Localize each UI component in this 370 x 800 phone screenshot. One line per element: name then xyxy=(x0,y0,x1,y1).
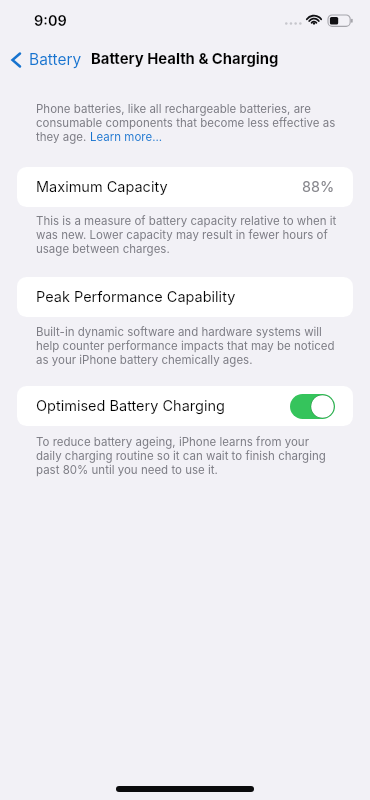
button[interactable]: Maximum Capacity xyxy=(17,167,353,207)
staticText: Battery Health & Charging xyxy=(91,50,279,68)
staticText: 9:09 xyxy=(34,12,67,30)
other: Wi-Fi xyxy=(306,13,322,25)
button[interactable]: Learn more... xyxy=(90,130,163,144)
button[interactable]: Optimised Battery Charging toggle xyxy=(290,394,335,419)
staticText: Maximum Capacity xyxy=(36,178,168,196)
staticText: Peak Performance Capability xyxy=(36,288,236,306)
button[interactable]: Peak Performance Capability xyxy=(17,277,353,317)
staticText: Phone batteries, like all rechargeable b… xyxy=(36,102,336,130)
staticText: they age. xyxy=(36,130,90,144)
staticText: Battery xyxy=(29,50,82,69)
staticText: 88% xyxy=(302,178,335,196)
button[interactable]: Back to Battery xyxy=(0,50,90,69)
staticText: To reduce battery ageing, iPhone learns … xyxy=(36,435,337,477)
staticText: Built-in dynamic software and hardware s… xyxy=(36,325,337,367)
other: Battery 44 percent xyxy=(328,15,353,27)
staticText: This is a measure of battery capacity re… xyxy=(36,214,337,256)
staticText: Optimised Battery Charging xyxy=(36,397,225,415)
other: Cellular signal xyxy=(285,21,301,26)
button[interactable]: Optimised Battery Charging xyxy=(17,386,353,426)
